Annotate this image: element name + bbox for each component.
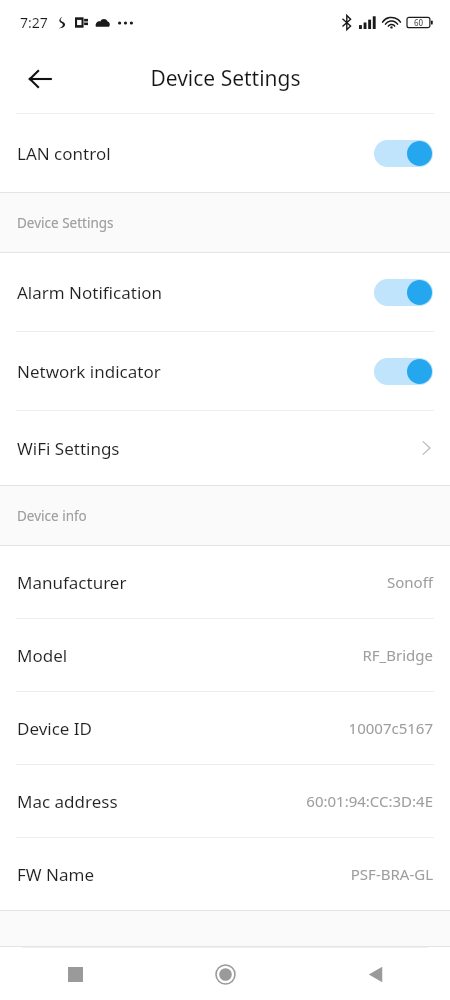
button[interactable]: Network indicator: [0, 332, 450, 410]
staticText: RF_Bridge: [362, 645, 433, 665]
staticText: Sonoff: [387, 572, 433, 592]
button[interactable]: Home: [150, 948, 300, 1000]
staticText: 10007c5167: [348, 718, 433, 738]
staticText: Manufacturer: [17, 571, 387, 594]
staticText: Device info: [17, 507, 87, 525]
staticText: Device ID: [17, 717, 348, 740]
button[interactable]: FW Name: [0, 838, 450, 910]
button[interactable]: WiFi Settings: [0, 411, 450, 485]
button[interactable]: Alarm Notification: [0, 253, 450, 331]
staticText: Model: [17, 644, 362, 667]
staticText: LAN control: [17, 142, 374, 165]
staticText: 60: [414, 17, 424, 28]
staticText: PSF-BRA-GL: [350, 864, 433, 884]
staticText: Device Settings: [150, 64, 301, 93]
button[interactable]: Device ID: [0, 692, 450, 764]
staticText: 60:01:94:CC:3D:4E: [306, 791, 433, 811]
button[interactable]: Mac address: [0, 765, 450, 837]
staticText: FW Name: [17, 863, 350, 886]
staticText: WiFi Settings: [17, 437, 422, 460]
button[interactable]: LAN control: [0, 114, 450, 192]
staticText: Alarm Notification: [17, 281, 374, 304]
button[interactable]: Recent apps: [0, 948, 150, 1000]
staticText: 7:27: [20, 13, 48, 32]
staticText: Device Settings: [17, 214, 114, 232]
button[interactable]: Back: [300, 948, 450, 1000]
staticText: Network indicator: [17, 360, 374, 383]
button[interactable]: Manufacturer: [0, 546, 450, 618]
button[interactable]: Model: [0, 619, 450, 691]
button[interactable]: Back: [18, 57, 62, 101]
staticText: Mac address: [17, 790, 306, 813]
